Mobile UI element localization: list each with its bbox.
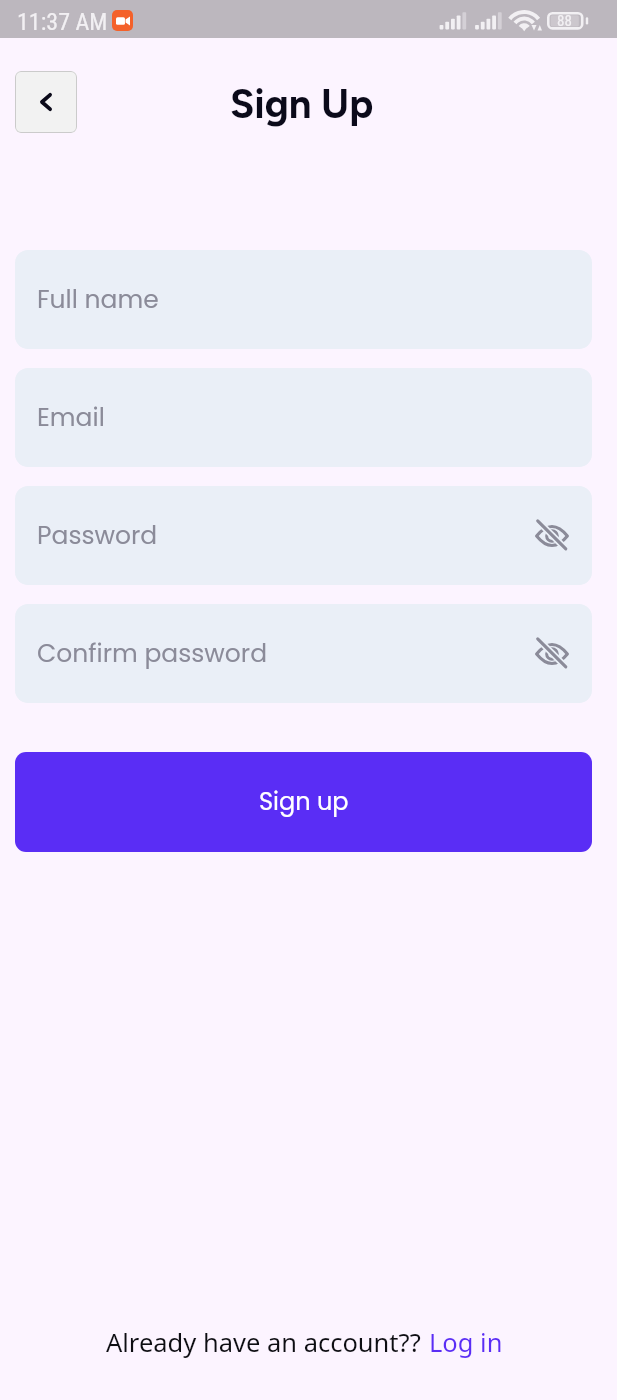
button[interactable]: Full name: [15, 250, 592, 349]
staticText: Password: [37, 518, 158, 553]
staticText: Log in: [429, 1325, 503, 1360]
button[interactable]: Toggle password visibility: [530, 632, 574, 676]
staticText: 88: [557, 12, 572, 30]
button[interactable]: Confirm password: [15, 604, 592, 703]
staticText: Confirm password: [37, 636, 268, 671]
button[interactable]: Toggle password visibility: [530, 514, 574, 558]
button[interactable]: Sign up: [15, 752, 592, 852]
staticText: Sign Up: [230, 80, 374, 128]
button[interactable]: Email: [15, 368, 592, 467]
button[interactable]: Password: [15, 486, 592, 585]
staticText: Full name: [37, 282, 159, 317]
button[interactable]: Back: [15, 71, 77, 133]
staticText: Already have an account??: [106, 1325, 421, 1360]
staticText: Sign up: [259, 785, 349, 819]
staticText: 11:37 AM: [17, 8, 108, 36]
button[interactable]: Log in: [429, 1325, 503, 1360]
staticText: Email: [37, 400, 105, 435]
